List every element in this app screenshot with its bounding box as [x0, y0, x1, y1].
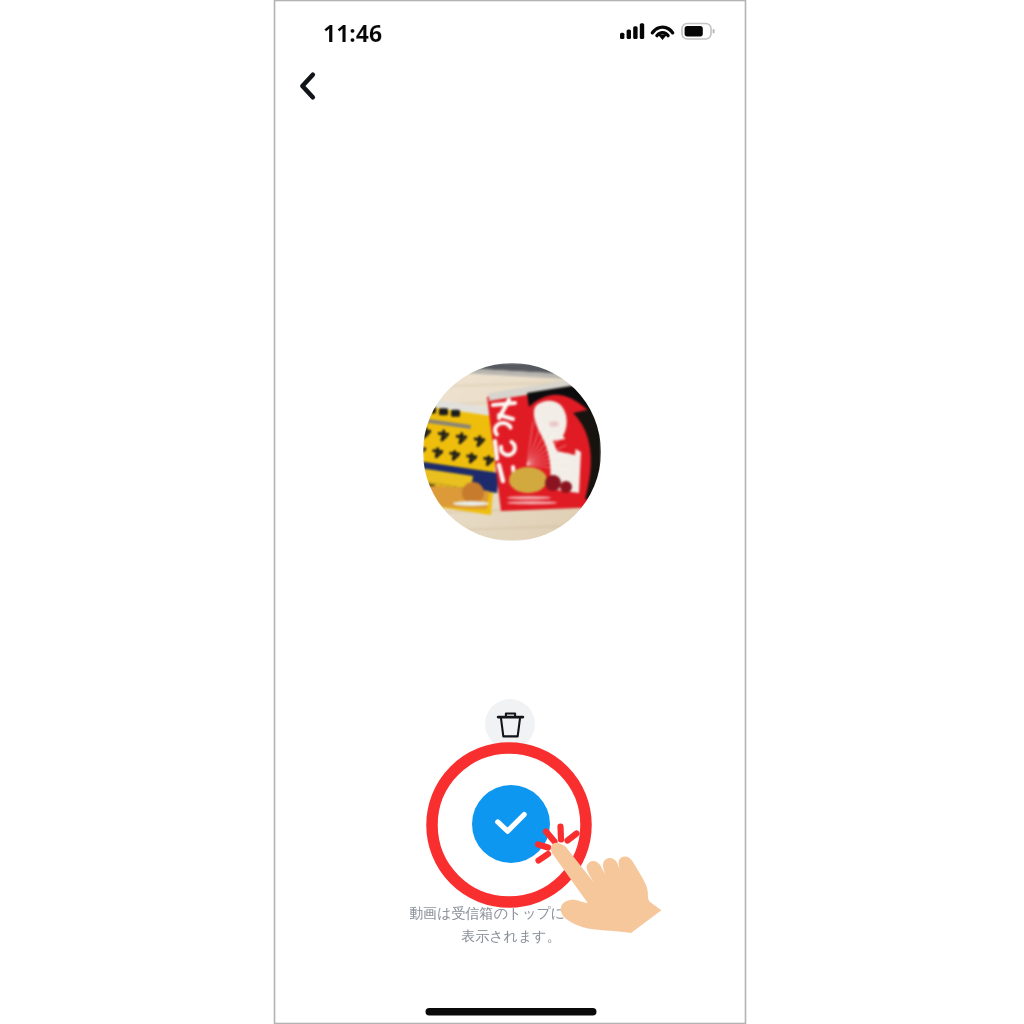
staticText: 11:46 [323, 17, 383, 48]
button[interactable]: Send [472, 785, 550, 863]
button[interactable]: Back [280, 58, 336, 114]
staticText: 動画は受信箱のトップに 24時間 表示されます。 [291, 903, 731, 945]
button[interactable]: Delete [485, 699, 535, 749]
